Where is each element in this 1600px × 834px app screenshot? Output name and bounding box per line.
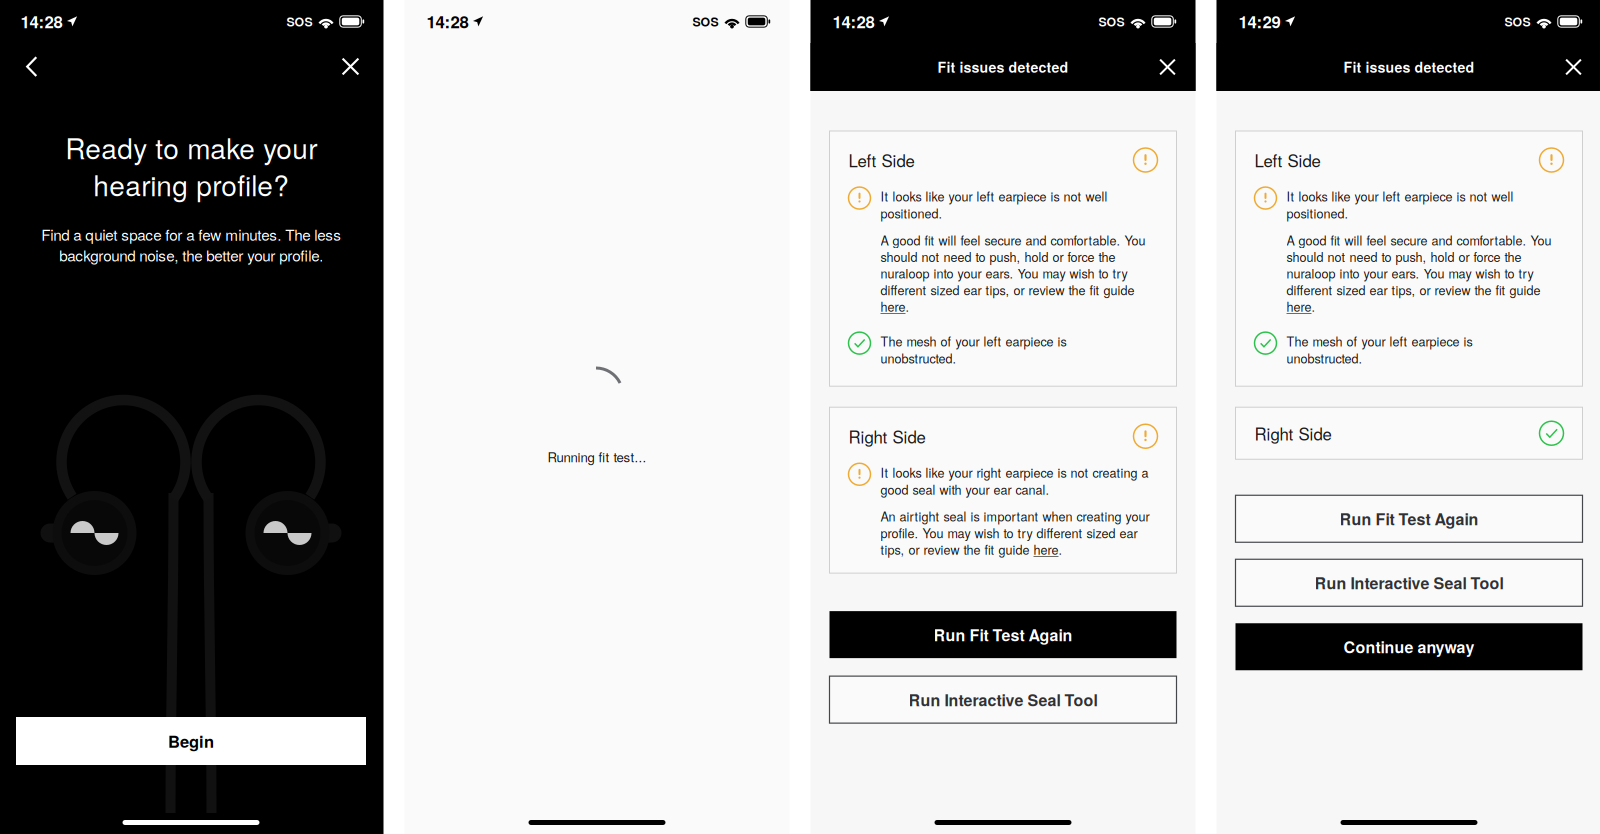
staticText: Left Side [848, 148, 914, 172]
staticText: Right Side [1254, 421, 1331, 445]
button[interactable]: Run Interactive Seal Tool [1235, 559, 1582, 606]
button[interactable]: Run Fit Test Again [829, 611, 1176, 658]
staticText: SOS [1504, 13, 1530, 30]
button[interactable]: Run Interactive Seal Tool [829, 676, 1176, 723]
staticText: 14:28 [426, 9, 468, 34]
staticText: Right Side [848, 424, 925, 448]
button[interactable]: Run Fit Test Again [1235, 495, 1582, 542]
button[interactable]: Back [11, 46, 51, 86]
staticText: Fit issues detected [1343, 57, 1474, 77]
button[interactable]: Close [1553, 47, 1593, 87]
button[interactable]: Close [1147, 47, 1187, 87]
staticText: Fit issues detected [937, 57, 1068, 77]
staticText: Run Fit Test Again [1339, 507, 1478, 530]
staticText: An airtight seal is important when creat… [880, 507, 1149, 558]
staticText: 14:28 [20, 9, 62, 34]
staticText: SOS [1098, 13, 1124, 30]
staticText: 14:29 [1238, 9, 1280, 34]
staticText: Begin [168, 729, 214, 753]
staticText: Run Interactive Seal Tool [1314, 571, 1503, 594]
staticText: A good fit will feel secure and comforta… [1286, 231, 1551, 315]
staticText: A good fit will feel secure and comforta… [880, 231, 1145, 315]
staticText: It looks like your left earpiece is not … [1286, 187, 1513, 222]
staticText: Running fit test... [547, 447, 646, 466]
staticText: Run Fit Test Again [933, 623, 1072, 646]
staticText: Ready to make your hearing profile? [65, 127, 317, 204]
staticText: It looks like your left earpiece is not … [880, 187, 1107, 222]
staticText: The mesh of your left earpiece is unobst… [1286, 332, 1472, 367]
staticText: The mesh of your left earpiece is unobst… [880, 332, 1066, 367]
staticText: 14:28 [832, 9, 874, 34]
staticText: Continue anyway [1343, 635, 1474, 658]
button[interactable]: Continue anyway [1235, 623, 1582, 670]
staticText: It looks like your right earpiece is not… [880, 463, 1148, 498]
staticText: Find a quiet space for a few minutes. Th… [41, 223, 341, 266]
staticText: Run Interactive Seal Tool [908, 688, 1097, 711]
button[interactable]: Begin [16, 717, 366, 765]
button[interactable]: Close [330, 46, 370, 86]
staticText: SOS [692, 13, 718, 30]
staticText: Left Side [1254, 148, 1320, 172]
staticText: SOS [286, 13, 312, 30]
